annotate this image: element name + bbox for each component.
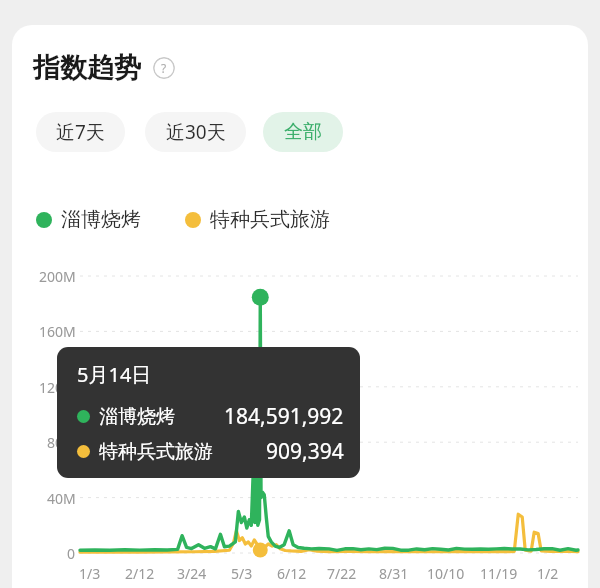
staticText: 7/22 [327, 564, 357, 583]
button[interactable]: 近30天 [145, 112, 246, 152]
staticText: 11/19 [480, 564, 518, 583]
button[interactable]: Help [153, 57, 175, 79]
staticText: 5月14日 [77, 361, 152, 388]
staticText: 指数趋势 [33, 51, 141, 85]
button[interactable]: 近7天 [36, 112, 125, 152]
staticText: 全部 [284, 120, 322, 144]
staticText: 10/10 [427, 564, 465, 583]
staticText: 200M [39, 267, 76, 286]
staticText: 2/12 [125, 564, 155, 583]
staticText: 0 [67, 544, 76, 563]
button[interactable]: 淄博烧烤 [36, 207, 141, 232]
staticText: 120M [39, 378, 76, 397]
staticText: 3/24 [177, 564, 207, 583]
staticText: 特种兵式旅游 [210, 207, 330, 232]
staticText: 5/3 [231, 564, 253, 583]
staticText: 40M [47, 489, 76, 508]
staticText: 近30天 [166, 119, 226, 145]
staticText: 淄博烧烤 [99, 405, 175, 429]
staticText: 184,591,992 [224, 402, 344, 431]
staticText: 淄博烧烤 [61, 207, 141, 232]
staticText: 160M [39, 322, 76, 341]
staticText: 909,394 [266, 437, 344, 466]
staticText: 1/2 [537, 564, 559, 583]
button[interactable]: 特种兵式旅游 [185, 207, 330, 232]
staticText: 80M [47, 433, 76, 452]
staticText: 近7天 [56, 119, 105, 145]
staticText: 6/12 [277, 564, 307, 583]
button[interactable]: 全部 [263, 112, 343, 152]
staticText: 8/31 [379, 564, 409, 583]
staticText: 特种兵式旅游 [99, 440, 213, 464]
staticText: 1/3 [79, 564, 101, 583]
button[interactable]: 5月14日 [57, 347, 360, 478]
staticText: ? [161, 60, 167, 76]
